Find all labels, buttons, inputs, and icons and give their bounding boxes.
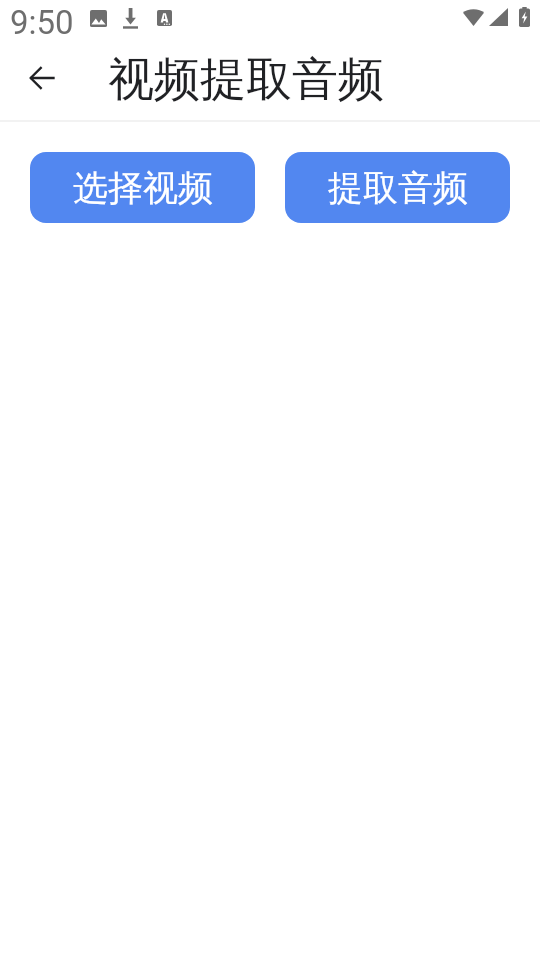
button[interactable]: Back xyxy=(18,54,66,102)
staticText: 9:50 xyxy=(10,3,74,42)
staticText: 提取音频 xyxy=(328,166,468,210)
staticText: 选择视频 xyxy=(73,166,213,210)
staticText: 视频提取音频 xyxy=(108,51,384,109)
button[interactable]: 选择视频 xyxy=(30,152,255,223)
button[interactable]: 提取音频 xyxy=(285,152,510,223)
